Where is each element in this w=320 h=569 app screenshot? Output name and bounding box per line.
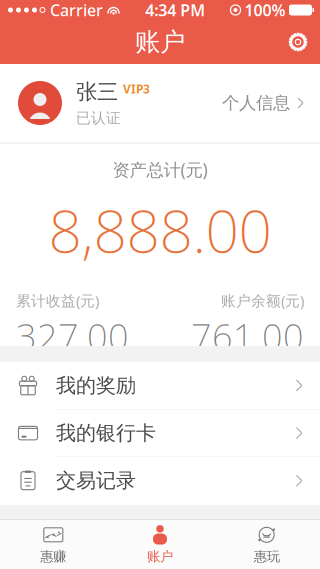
staticText: 惠玩 [254, 548, 280, 565]
staticText: 资产总计(元) [112, 158, 207, 181]
button[interactable]: 我的银行卡 [0, 410, 320, 457]
staticText: 张三 [76, 79, 118, 105]
staticText: 8,888.00 [48, 191, 271, 269]
staticText: 惠赚 [40, 548, 66, 565]
button[interactable]: 惠玩 [213, 520, 320, 569]
staticText: 交易记录 [56, 468, 136, 493]
button[interactable]: Settings [276, 20, 320, 64]
button[interactable]: 张三 [0, 64, 320, 142]
staticText: 我的奖励 [56, 373, 136, 398]
button[interactable]: 惠赚 [0, 520, 107, 569]
staticText: 账户余额(元) [221, 291, 304, 310]
staticText: 4:34 PM [145, 0, 205, 21]
staticText: 累计收益(元) [16, 291, 99, 310]
staticText: 我的银行卡 [56, 421, 156, 445]
staticText: 327.00 [16, 312, 129, 360]
button[interactable]: 交易记录 [0, 457, 320, 505]
staticText: 已认证 [76, 109, 121, 127]
staticText: 账户 [147, 548, 173, 565]
staticText: 100% [244, 0, 285, 21]
button[interactable]: 账户 [107, 520, 213, 569]
staticText: VIP3 [123, 81, 150, 97]
button[interactable]: 我的奖励 [0, 362, 320, 410]
staticText: Carrier [50, 0, 103, 21]
staticText: 个人信息 [222, 92, 290, 114]
staticText: 761.00 [191, 312, 304, 360]
staticText: 账户 [135, 26, 185, 57]
